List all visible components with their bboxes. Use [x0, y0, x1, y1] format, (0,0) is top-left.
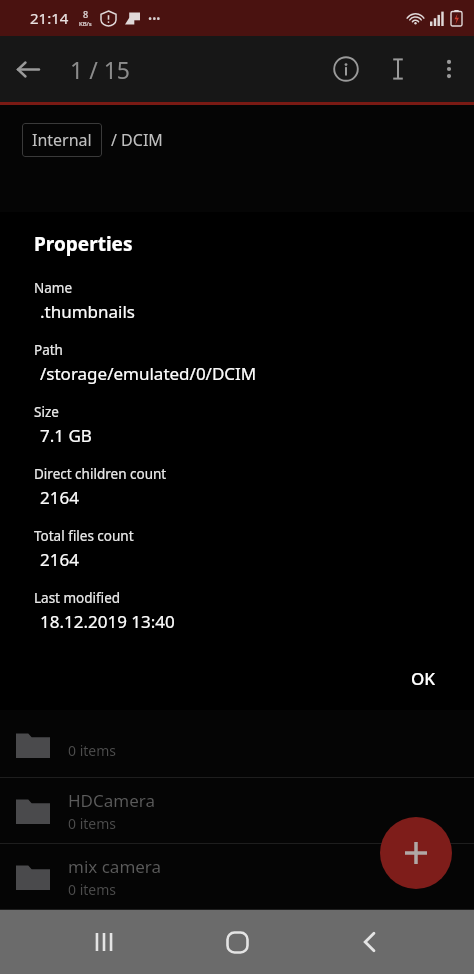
staticText: / DCIM: [111, 129, 163, 151]
staticText: 8: [83, 8, 89, 20]
staticText: KB/s: [79, 20, 92, 28]
button[interactable]: Internal: [22, 123, 102, 157]
button[interactable]: More options: [424, 44, 474, 94]
staticText: 18.12.2019 13:40: [40, 610, 175, 633]
button[interactable]: Back: [0, 41, 56, 97]
staticText: Internal: [32, 129, 92, 151]
staticText: 7.1 GB: [40, 424, 92, 447]
staticText: 0 items: [68, 814, 117, 833]
button[interactable]: Recents: [75, 913, 133, 971]
staticText: 0 items: [68, 741, 117, 760]
staticText: Last modified: [34, 589, 121, 607]
staticText: •••: [148, 11, 161, 26]
staticText: Properties: [34, 231, 133, 257]
staticText: 2164: [40, 486, 79, 509]
staticText: 1 / 15: [70, 54, 130, 85]
staticText: mix camera: [68, 855, 162, 878]
button[interactable]: Select text: [372, 43, 424, 95]
staticText: Path: [34, 341, 63, 359]
staticText: HDCamera: [68, 789, 155, 812]
staticText: Size: [34, 403, 59, 421]
staticText: 2164: [40, 548, 79, 571]
staticText: Direct children count: [34, 465, 167, 483]
staticText: .thumbnails: [40, 300, 136, 323]
button[interactable]: mix camera: [0, 844, 474, 909]
staticText: Name: [34, 279, 73, 297]
button[interactable]: Info: [320, 43, 372, 95]
button[interactable]: Add: [380, 817, 452, 889]
button[interactable]: 0 items: [0, 712, 474, 777]
button[interactable]: Back: [341, 913, 399, 971]
staticText: 0 items: [68, 880, 117, 899]
staticText: 21:14: [30, 8, 69, 28]
button[interactable]: Home: [208, 913, 266, 971]
button[interactable]: OK: [397, 661, 450, 696]
button[interactable]: / DCIM: [111, 129, 163, 151]
staticText: OK: [411, 667, 436, 690]
staticText: Total files count: [34, 527, 134, 545]
button[interactable]: HDCamera: [0, 778, 474, 843]
staticText: /storage/emulated/0/DCIM: [40, 362, 257, 385]
